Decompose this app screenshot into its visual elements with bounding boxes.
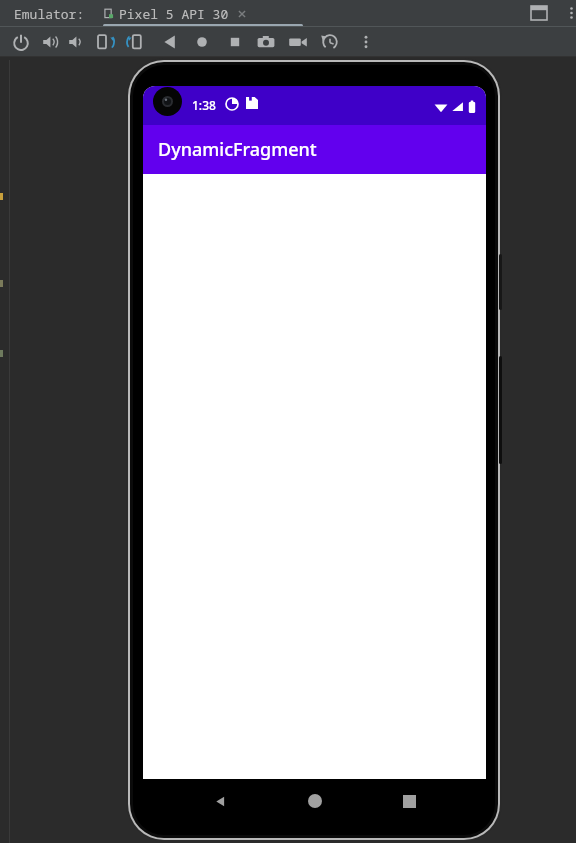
button[interactable]: Emulator control <box>356 32 376 52</box>
button[interactable]: Emulator control <box>256 32 276 52</box>
button[interactable]: Emulator control <box>66 32 86 52</box>
button[interactable]: Emulator control <box>160 32 180 52</box>
button[interactable]: Back <box>203 784 237 818</box>
button[interactable]: Emulator control <box>225 32 245 52</box>
button[interactable]: Home <box>298 784 332 818</box>
button[interactable]: Emulator control <box>192 32 212 52</box>
button[interactable]: Emulator control <box>126 32 146 52</box>
button[interactable]: Close tab <box>235 7 249 21</box>
staticText: Emulator: <box>14 5 85 23</box>
button[interactable]: Emulator control <box>96 32 116 52</box>
staticText: Pixel 5 API 30 <box>119 5 229 23</box>
button[interactable]: Minimize panel <box>531 6 547 20</box>
button[interactable]: Recents <box>392 784 426 818</box>
button[interactable]: Pixel 5 API 30 <box>103 0 249 27</box>
button[interactable]: Emulator control <box>40 32 60 52</box>
button[interactable]: More options <box>567 5 576 21</box>
staticText: 1:38 <box>192 97 216 113</box>
button[interactable]: Emulator control <box>11 32 31 52</box>
button[interactable]: Emulator control <box>288 32 308 52</box>
button[interactable]: Emulator control <box>320 32 340 52</box>
staticText: DynamicFragment <box>158 137 317 162</box>
